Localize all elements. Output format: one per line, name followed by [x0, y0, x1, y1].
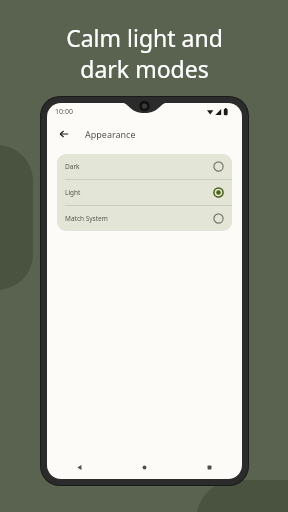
- staticText: Calm light and: [66, 22, 223, 53]
- staticText: Match System: [65, 214, 108, 223]
- button[interactable]: Dark: [57, 154, 232, 179]
- button[interactable]: Home: [112, 455, 177, 479]
- button[interactable]: Back: [47, 455, 112, 479]
- button[interactable]: Match System: [57, 206, 232, 231]
- staticText: Light: [65, 188, 81, 197]
- staticText: Appearance: [85, 128, 136, 140]
- staticText: 10:00: [55, 107, 73, 117]
- button[interactable]: Recent apps: [177, 455, 242, 479]
- staticText: dark modes: [80, 53, 209, 84]
- button[interactable]: Back: [54, 124, 74, 144]
- staticText: Dark: [65, 162, 80, 171]
- button[interactable]: Light: [57, 180, 232, 205]
